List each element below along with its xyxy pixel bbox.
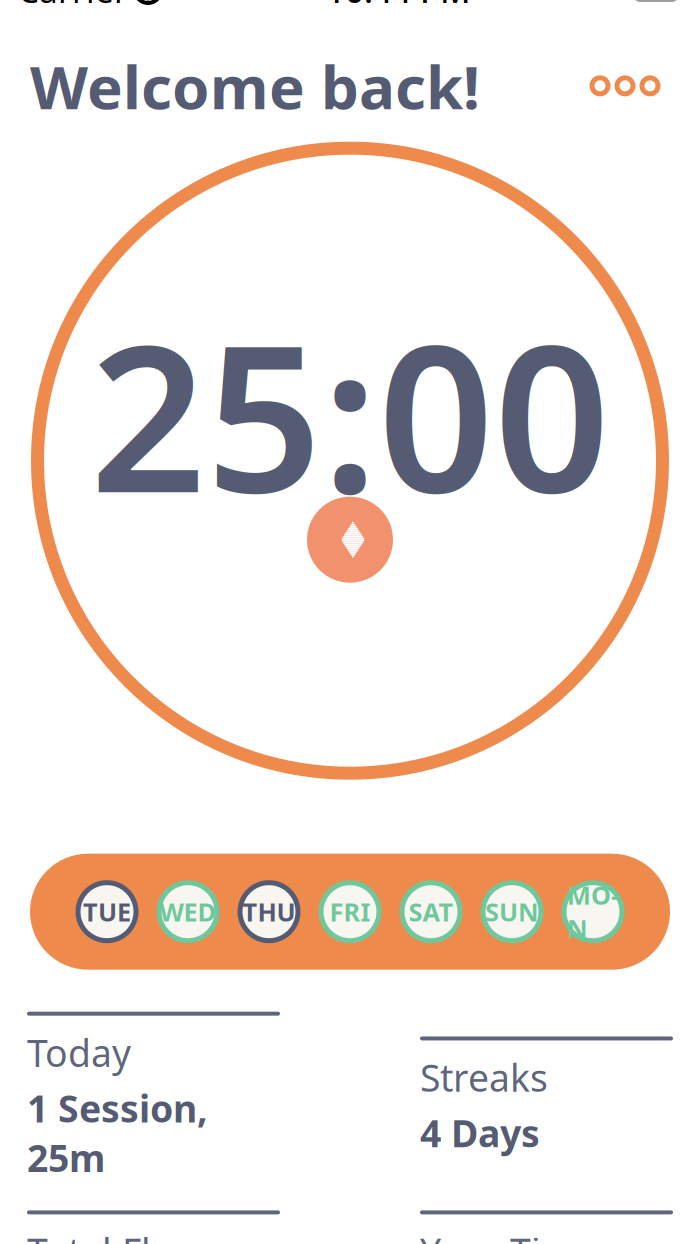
staticText: Streaks	[420, 1052, 548, 1102]
staticText: Your Time	[420, 1226, 597, 1244]
button[interactable]: WED	[157, 881, 219, 943]
button[interactable]: THU	[238, 881, 300, 943]
button[interactable]: MON	[562, 881, 624, 943]
staticText: WED	[159, 895, 216, 928]
button[interactable]: FRI	[319, 881, 381, 943]
staticText: MON	[567, 878, 619, 945]
staticText: THU	[242, 895, 295, 928]
staticText: FRI	[329, 895, 370, 928]
button[interactable]: More options	[580, 66, 670, 106]
staticText: Welcome back!	[30, 46, 480, 126]
staticText: 4 Days	[420, 1108, 540, 1158]
button[interactable]: SUN	[481, 881, 543, 943]
button[interactable]: TUE	[76, 881, 138, 943]
staticText: SUN	[485, 895, 539, 928]
staticText: 10:44 PM	[326, 0, 471, 12]
staticText: 25:00	[90, 279, 610, 548]
staticText: TUE	[83, 895, 131, 928]
staticText: SAT	[408, 895, 453, 928]
button[interactable]: SAT	[400, 881, 462, 943]
staticText: Total Flows	[27, 1226, 220, 1244]
button[interactable]: Start timer	[307, 497, 393, 583]
staticText: Carrier	[18, 0, 128, 12]
staticText: Today	[27, 1028, 131, 1077]
staticText: 1 Session, 25m	[27, 1083, 208, 1182]
